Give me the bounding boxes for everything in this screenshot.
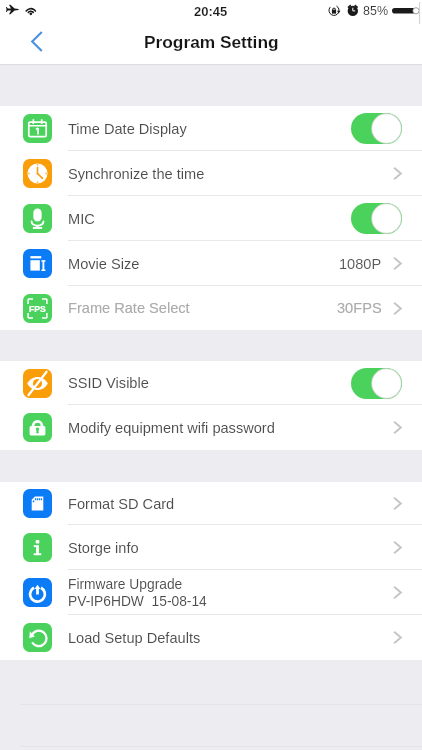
button[interactable] xyxy=(351,113,402,144)
button[interactable]: Format SD Card xyxy=(0,482,422,525)
button[interactable]: Movie Size xyxy=(0,241,422,286)
staticText: 20:45 xyxy=(194,4,228,19)
staticText: Synchronize the time xyxy=(68,166,205,182)
button[interactable]: Synchronize the time xyxy=(0,151,422,196)
staticText: Movie Size xyxy=(68,256,140,272)
staticText: Modify equipment wifi password xyxy=(68,420,275,436)
staticText: Load Setup Defaults xyxy=(68,630,201,646)
staticText: Frame Rate Select xyxy=(68,300,190,316)
staticText: 1080P xyxy=(339,256,382,272)
button[interactable]: FPS xyxy=(0,286,422,330)
button[interactable] xyxy=(351,368,402,399)
staticText: Program Setting xyxy=(144,32,279,51)
button[interactable]: Storge info xyxy=(0,525,422,570)
button[interactable]: Modify equipment wifi password xyxy=(0,405,422,450)
staticText: Time Date Display xyxy=(68,121,187,137)
staticText: SSID Visible xyxy=(68,375,149,391)
staticText: 30FPS xyxy=(337,300,382,316)
button[interactable]: Firmware Upgrade xyxy=(0,570,422,615)
button[interactable]: Load Setup Defaults xyxy=(0,615,422,660)
staticText: PV-IP6HDW 15-08-14 xyxy=(68,594,207,609)
button[interactable] xyxy=(351,203,402,234)
button[interactable]: Time Date Display xyxy=(0,106,422,151)
staticText: FPS xyxy=(29,304,46,314)
staticText: Firmware Upgrade xyxy=(68,577,183,592)
button[interactable]: SSID Visible xyxy=(0,361,422,405)
staticText: MIC xyxy=(68,211,95,227)
button[interactable]: MIC xyxy=(0,196,422,241)
staticText: 85% xyxy=(363,4,389,18)
staticText: Storge info xyxy=(68,540,139,556)
button[interactable]: Back xyxy=(14,19,59,64)
staticText: Format SD Card xyxy=(68,496,175,512)
